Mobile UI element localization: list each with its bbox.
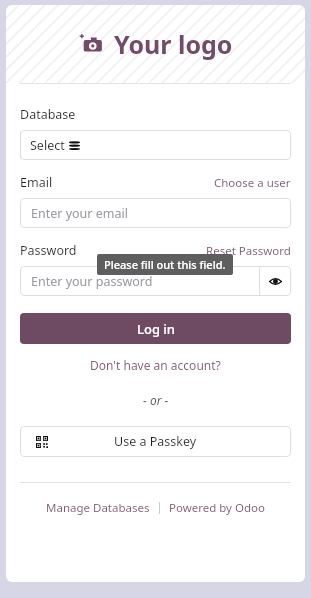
staticText: Password — [20, 242, 77, 259]
staticText: Manage Databases — [46, 500, 150, 516]
button[interactable]: Use a Passkey — [20, 426, 291, 457]
staticText: Don't have an account? — [90, 357, 221, 373]
button[interactable]: Powered by Odoo — [169, 500, 265, 516]
staticText: Enter your email — [31, 205, 128, 222]
button[interactable]: Show password — [260, 266, 291, 296]
staticText: Email — [20, 174, 53, 191]
button[interactable]: Don't have an account? — [90, 357, 221, 373]
button[interactable]: Log in — [20, 313, 291, 344]
staticText: Reset Password — [206, 243, 291, 259]
staticText: Please fill out this field. — [104, 257, 226, 272]
staticText: Your logo — [114, 27, 233, 61]
button[interactable]: Reset Password — [206, 243, 291, 259]
button[interactable]: Enter your password — [20, 266, 259, 296]
staticText: Choose a user — [214, 175, 291, 191]
staticText: Select — [30, 137, 65, 154]
staticText: Log in — [137, 320, 175, 338]
staticText: - or - — [143, 392, 169, 408]
button[interactable]: Enter your email — [20, 198, 291, 228]
staticText: Enter your password — [31, 273, 153, 290]
staticText: Use a Passkey — [114, 433, 197, 450]
button[interactable]: Select — [21, 130, 291, 160]
button[interactable]: Choose a user — [214, 175, 291, 191]
staticText: Powered by Odoo — [169, 500, 265, 516]
button[interactable]: Manage Databases — [46, 500, 150, 516]
staticText: Database — [20, 106, 76, 123]
